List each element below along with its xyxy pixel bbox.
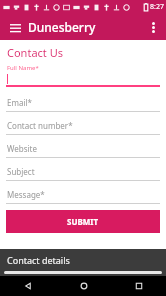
- button[interactable]: SUBMIT: [6, 210, 160, 233]
- staticText: Subject: [7, 166, 35, 177]
- staticText: Dunesberry: [28, 19, 96, 35]
- button[interactable]: Contact number*: [0, 120, 166, 135]
- staticText: Contact number*: [7, 120, 73, 131]
- staticText: Full Name*: [7, 64, 39, 72]
- button[interactable]: Full Name*: [0, 64, 166, 87]
- staticText: Contact Us: [7, 45, 63, 60]
- staticText: SUBMIT: [67, 216, 99, 227]
- button[interactable]: Back: [0, 276, 56, 296]
- staticText: Email*: [7, 97, 32, 108]
- button[interactable]: Website: [0, 143, 166, 158]
- button[interactable]: Open navigation drawer: [6, 18, 24, 36]
- button[interactable]: Subject: [0, 166, 166, 181]
- button[interactable]: Contact details: [0, 249, 166, 276]
- button[interactable]: Message*: [0, 189, 166, 204]
- staticText: Message*: [7, 189, 45, 200]
- staticText: Contact details: [7, 254, 70, 266]
- staticText: 8:27: [150, 2, 164, 12]
- button[interactable]: More options: [144, 18, 162, 36]
- button[interactable]: Home: [56, 276, 111, 296]
- staticText: Website: [7, 143, 38, 154]
- button[interactable]: Recent apps: [111, 276, 166, 296]
- button[interactable]: Email*: [0, 97, 166, 112]
